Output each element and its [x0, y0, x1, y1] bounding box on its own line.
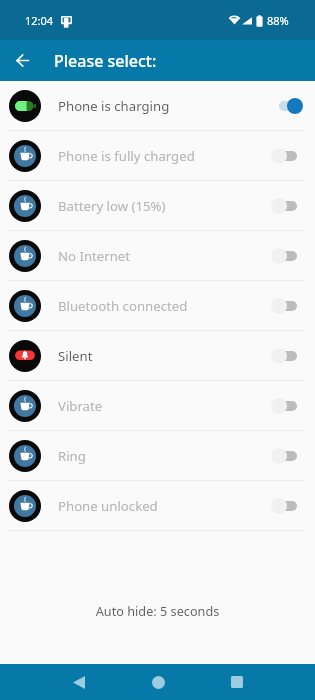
button[interactable]: Home [138, 664, 178, 700]
staticText: Please select: [54, 50, 157, 72]
button[interactable]: Bluetooth connected [0, 281, 315, 331]
button[interactable]: Back [0, 40, 44, 81]
button[interactable]: No Internet [0, 231, 315, 281]
button[interactable]: Battery low (15%) [0, 181, 315, 231]
button[interactable]: Toggle [279, 446, 297, 466]
button[interactable]: Toggle [279, 96, 297, 116]
staticText: Phone is fully charged [58, 147, 195, 165]
button[interactable]: Toggle [279, 146, 297, 166]
button[interactable]: Toggle [279, 396, 297, 416]
staticText: No Internet [58, 247, 131, 265]
button[interactable]: Toggle [279, 346, 297, 366]
button[interactable]: Toggle [279, 246, 297, 266]
staticText: Phone is charging [58, 97, 170, 115]
button[interactable]: Ring [0, 431, 315, 481]
staticText: 12:04 [25, 13, 54, 28]
staticText: Ring [58, 447, 86, 465]
staticText: Bluetooth connected [58, 297, 188, 315]
staticText: Vibrate [58, 397, 103, 415]
staticText: Battery low (15%) [58, 197, 166, 215]
button[interactable]: Phone unlocked [0, 481, 315, 531]
button[interactable]: Vibrate [0, 381, 315, 431]
button[interactable]: Recent apps [217, 664, 257, 700]
button[interactable]: Toggle [279, 196, 297, 216]
staticText: Silent [58, 347, 93, 365]
button[interactable]: Toggle [279, 496, 297, 516]
button[interactable]: Phone is charging [0, 81, 315, 131]
button[interactable]: Phone is fully charged [0, 131, 315, 181]
button[interactable]: Toggle [279, 296, 297, 316]
button[interactable]: Back [59, 664, 99, 700]
staticText: Phone unlocked [58, 497, 158, 515]
button[interactable]: Silent [0, 331, 315, 381]
staticText: Auto hide: 5 seconds [0, 602, 315, 619]
staticText: 88% [267, 13, 289, 28]
